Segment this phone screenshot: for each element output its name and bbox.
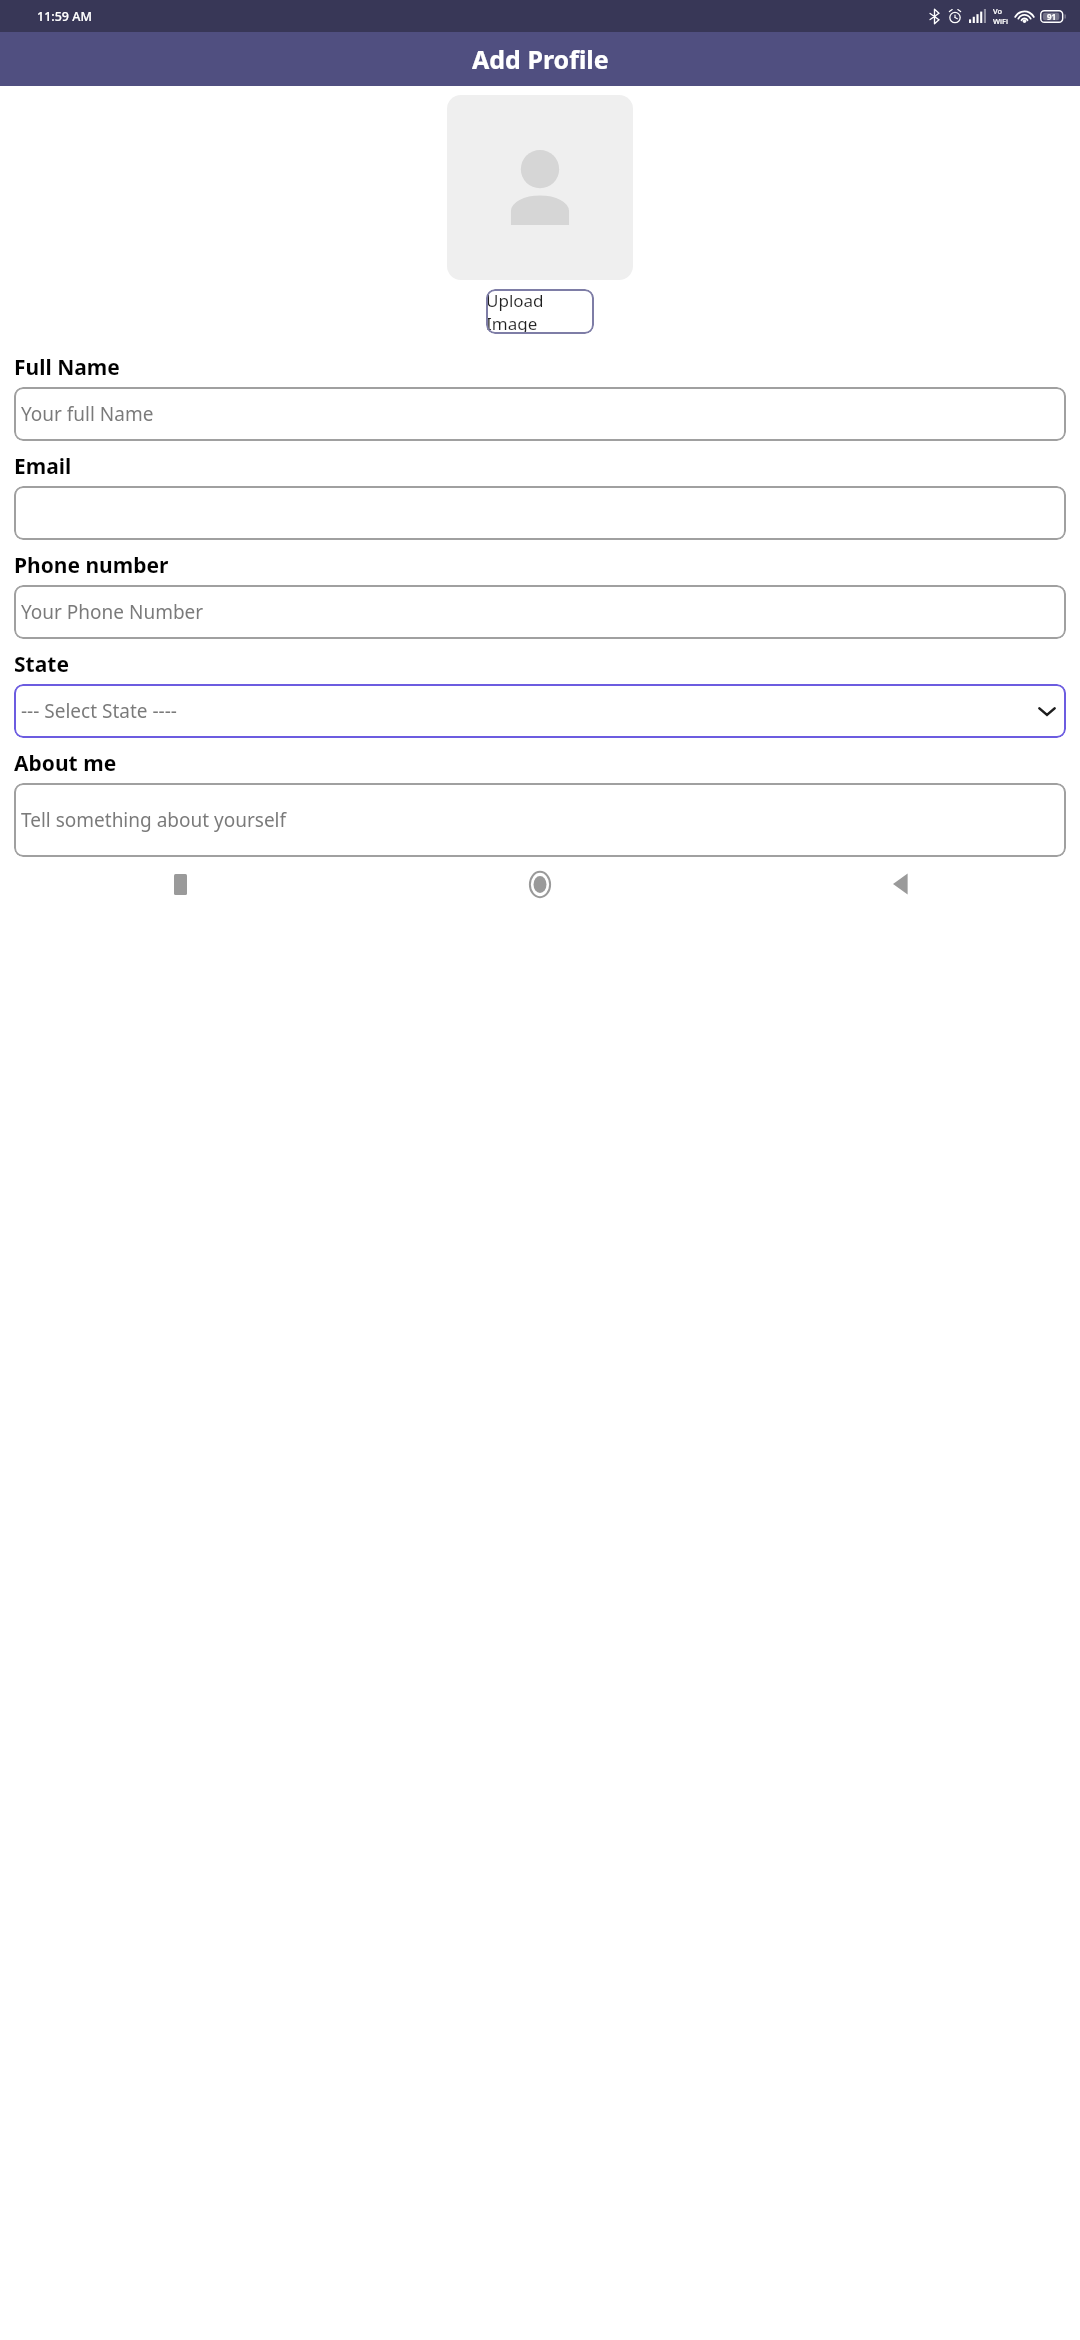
button[interactable]: --- Select State ---- — [14, 684, 1066, 738]
button[interactable]: Back — [720, 857, 1080, 911]
staticText: Phone number — [14, 551, 169, 580]
staticText: Vo — [993, 6, 1003, 16]
staticText: About me — [14, 749, 117, 778]
staticText: Tell something about yourself — [21, 807, 1059, 833]
staticText: Upload Image — [486, 289, 594, 334]
button[interactable]: Upload Image — [486, 289, 594, 334]
button[interactable] — [14, 486, 1066, 540]
staticText: Add Profile — [472, 42, 609, 76]
staticText: Email — [14, 452, 72, 481]
staticText: State — [14, 650, 69, 679]
staticText: WiFi — [993, 16, 1009, 26]
button[interactable]: Your full Name — [14, 387, 1066, 441]
button[interactable]: Home — [360, 857, 720, 911]
staticText: 11:59 AM — [37, 8, 92, 25]
staticText: Full Name — [14, 353, 120, 382]
staticText: --- Select State ---- — [21, 698, 1037, 724]
button[interactable]: Profile photo — [447, 95, 633, 280]
staticText: Your Phone Number — [21, 599, 1059, 625]
button[interactable]: Recent apps — [0, 857, 360, 911]
staticText: 91 — [1047, 11, 1057, 22]
staticText: Your full Name — [21, 401, 1059, 427]
button[interactable]: Tell something about yourself — [14, 783, 1066, 857]
button[interactable]: Your Phone Number — [14, 585, 1066, 639]
